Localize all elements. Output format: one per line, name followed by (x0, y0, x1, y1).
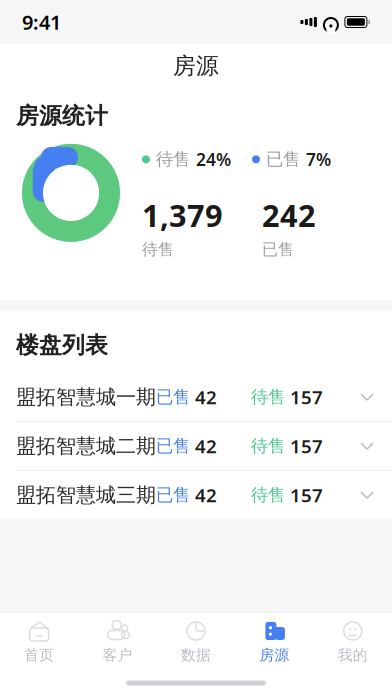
staticText: 我的 (338, 646, 368, 664)
staticText: 9:41 (22, 9, 61, 35)
staticText: 房源 (259, 646, 289, 664)
staticText: 157 (290, 434, 323, 458)
staticText: 盟拓智慧城二期 (16, 434, 156, 458)
staticText: 7% (306, 148, 331, 171)
button[interactable]: 数据 (157, 613, 235, 670)
staticText: 已售 (156, 435, 190, 457)
staticText: 数据 (181, 646, 211, 664)
button[interactable]: 盟拓智慧城二期 (0, 422, 392, 470)
button[interactable]: 我的 (314, 613, 392, 670)
staticText: 157 (290, 483, 323, 507)
button[interactable]: 盟拓智慧城一期 (0, 373, 392, 421)
staticText: 房源 (173, 52, 219, 80)
staticText: 已售 (266, 149, 300, 170)
staticText: 盟拓智慧城三期 (16, 483, 156, 507)
staticText: 待售 (156, 149, 190, 170)
staticText: 已售 (156, 484, 190, 506)
button[interactable]: 客户 (78, 613, 157, 670)
button[interactable]: 房源 (235, 613, 314, 670)
button[interactable]: 盟拓智慧城三期 (0, 471, 392, 519)
staticText: 24% (196, 148, 231, 171)
staticText: 42 (195, 434, 217, 458)
staticText: 42 (195, 483, 217, 507)
staticText: 待售 (251, 386, 285, 408)
staticText: 待售 (251, 435, 285, 457)
staticText: 待售 (142, 240, 174, 259)
button[interactable]: 首页 (0, 613, 78, 670)
staticText: 157 (290, 385, 323, 409)
staticText: 盟拓智慧城一期 (16, 385, 156, 409)
staticText: 42 (195, 385, 217, 409)
staticText: 客户 (103, 646, 133, 664)
staticText: 首页 (24, 646, 54, 664)
staticText: 待售 (251, 484, 285, 506)
staticText: 房源统计 (16, 102, 108, 130)
staticText: 1,379 (142, 195, 223, 236)
staticText: 已售 (156, 386, 190, 408)
staticText: 楼盘列表 (16, 331, 108, 359)
staticText: 已售 (262, 240, 294, 259)
staticText: 242 (262, 195, 316, 236)
